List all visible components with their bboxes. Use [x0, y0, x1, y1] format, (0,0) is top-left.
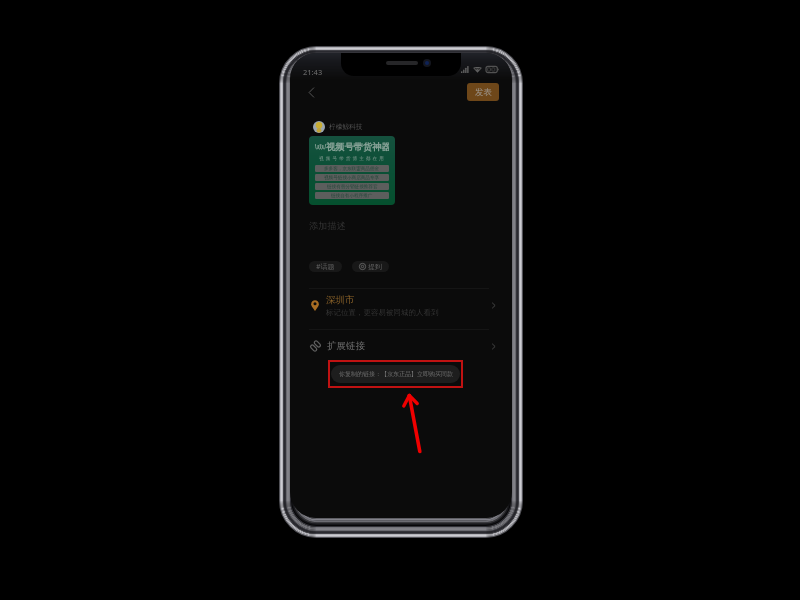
staticText: 视频号链接小商店商品专享: [324, 175, 380, 181]
staticText: 添加描述: [309, 220, 346, 232]
staticText: #话题: [316, 262, 335, 272]
staticText: 扩展链接: [327, 340, 365, 352]
button[interactable]: 深圳市: [290, 288, 512, 322]
staticText: 21:43: [303, 67, 323, 77]
staticText: 视频号带货神器: [326, 141, 389, 153]
staticText: 链接自有小程序推广: [331, 193, 373, 199]
staticText: 提到: [368, 262, 382, 271]
staticText: 你复制的链接：【京东正品】立即购买同款: [339, 370, 453, 378]
button[interactable]: 发表: [467, 83, 499, 101]
staticText: 视频号带货博主都在用: [319, 156, 386, 162]
button[interactable]: #话题: [309, 261, 342, 272]
button[interactable]: 柠檬鲸科技: [311, 120, 365, 134]
button[interactable]: 扩展链接: [290, 333, 512, 359]
staticText: 链接有替分销链接推荐官: [327, 184, 378, 190]
staticText: 发表: [475, 87, 492, 98]
staticText: 柠檬鲸科技: [329, 123, 363, 131]
staticText: 多多客，京东联盟商品佣金: [324, 166, 380, 172]
button[interactable]: 你复制的链接：【京东正品】立即购买同款: [331, 365, 460, 383]
button[interactable]: 提到: [352, 261, 389, 272]
button[interactable]: Back: [299, 80, 323, 104]
button[interactable]: 视频号带货神器: [309, 136, 395, 205]
staticText: 标记位置，更容易被同城的人看到: [326, 308, 439, 317]
staticText: 深圳市: [326, 294, 355, 306]
